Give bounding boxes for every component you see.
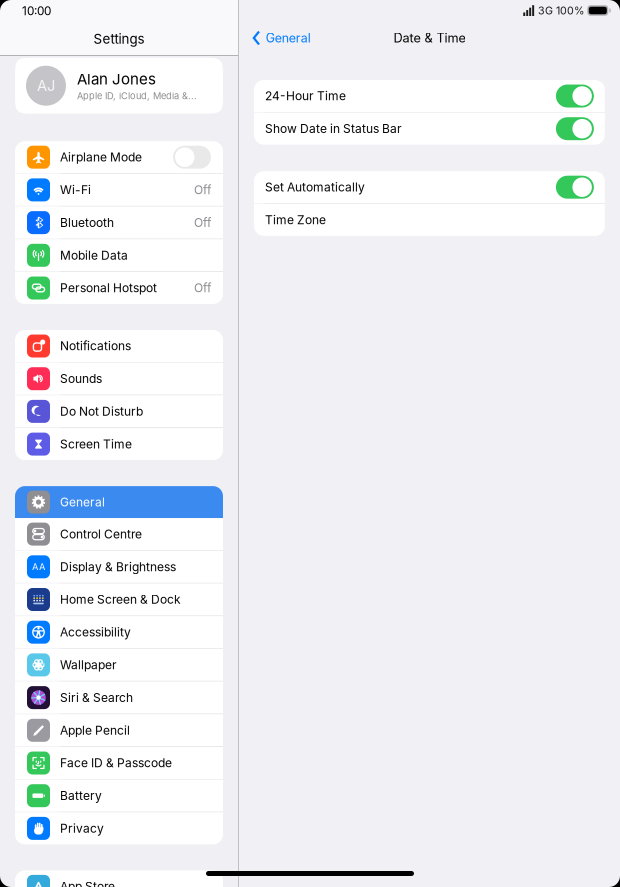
staticText: AA	[32, 561, 45, 572]
button[interactable]: Home Screen & Dock	[15, 583, 223, 615]
staticText: Time Zone	[265, 213, 326, 227]
staticText: Siri & Search	[60, 690, 133, 705]
staticText: Off	[194, 281, 211, 295]
staticText: Home Screen & Dock	[60, 592, 181, 607]
staticText: General	[266, 30, 311, 45]
staticText: Wallpaper	[60, 658, 117, 672]
button[interactable]: Personal Hotspot	[15, 272, 223, 304]
staticText: Off	[194, 215, 211, 230]
staticText: Off	[194, 183, 211, 197]
staticText: Personal Hotspot	[60, 281, 157, 295]
button[interactable]: Airplane Mode	[15, 141, 223, 173]
staticText: Sounds	[60, 371, 102, 386]
button[interactable]: Screen Time	[15, 428, 223, 460]
button[interactable]: Bluetooth	[15, 207, 223, 239]
button[interactable]: Battery	[15, 780, 223, 812]
button[interactable]: Siri & Search	[15, 682, 223, 714]
staticText: Display & Brightness	[60, 559, 176, 574]
button[interactable]: Apple Pencil	[15, 714, 223, 746]
staticText: Accessibility	[60, 625, 131, 639]
button[interactable]: Set Automatically	[254, 171, 605, 203]
staticText: Date & Time	[393, 30, 465, 46]
staticText: Airplane Mode	[60, 150, 142, 164]
staticText: Privacy	[60, 821, 104, 836]
button[interactable]: Face ID & Passcode	[15, 747, 223, 779]
button[interactable]: Do Not Disturb	[15, 395, 223, 427]
button[interactable]: 24-Hour Time	[254, 80, 605, 112]
staticText: 10:00	[22, 4, 51, 18]
staticText: Do Not Disturb	[60, 404, 143, 419]
staticText: Screen Time	[60, 437, 132, 451]
staticText: App Store	[60, 879, 115, 887]
staticText: Alan Jones	[77, 70, 156, 88]
staticText: Apple ID, iCloud, Media &...	[77, 90, 197, 101]
staticText: Set Automatically	[265, 180, 365, 194]
button[interactable]: AA	[15, 551, 223, 583]
staticText: Mobile Data	[60, 248, 128, 262]
staticText: 100%	[556, 4, 584, 17]
staticText: Show Date in Status Bar	[265, 121, 402, 136]
button[interactable]: Time Zone	[254, 204, 605, 236]
button[interactable]: General	[15, 486, 223, 518]
button[interactable]: AJ	[15, 58, 223, 114]
button[interactable]: General	[244, 21, 319, 55]
staticText: Face ID & Passcode	[60, 756, 172, 770]
staticText: 3G	[538, 4, 553, 17]
button[interactable]: Privacy	[15, 812, 223, 844]
staticText: General	[60, 495, 105, 509]
button[interactable]: Notifications	[15, 330, 223, 362]
button[interactable]: Show Date in Status Bar	[254, 113, 605, 145]
button[interactable]: Sounds	[15, 363, 223, 395]
staticText: AJ	[37, 77, 55, 94]
staticText: Bluetooth	[60, 215, 114, 230]
staticText: Apple Pencil	[60, 723, 130, 737]
staticText: Battery	[60, 788, 102, 803]
button[interactable]: Accessibility	[15, 616, 223, 648]
button[interactable]: Wallpaper	[15, 649, 223, 681]
button[interactable]: App Store	[15, 870, 223, 887]
staticText: 24-Hour Time	[265, 89, 346, 103]
button[interactable]: Wi-Fi	[15, 174, 223, 206]
staticText: Control Centre	[60, 527, 142, 541]
staticText: Settings	[93, 31, 144, 47]
staticText: Notifications	[60, 339, 131, 353]
button[interactable]: Mobile Data	[15, 239, 223, 271]
button[interactable]: Control Centre	[15, 518, 223, 550]
staticText: Wi-Fi	[60, 183, 91, 197]
